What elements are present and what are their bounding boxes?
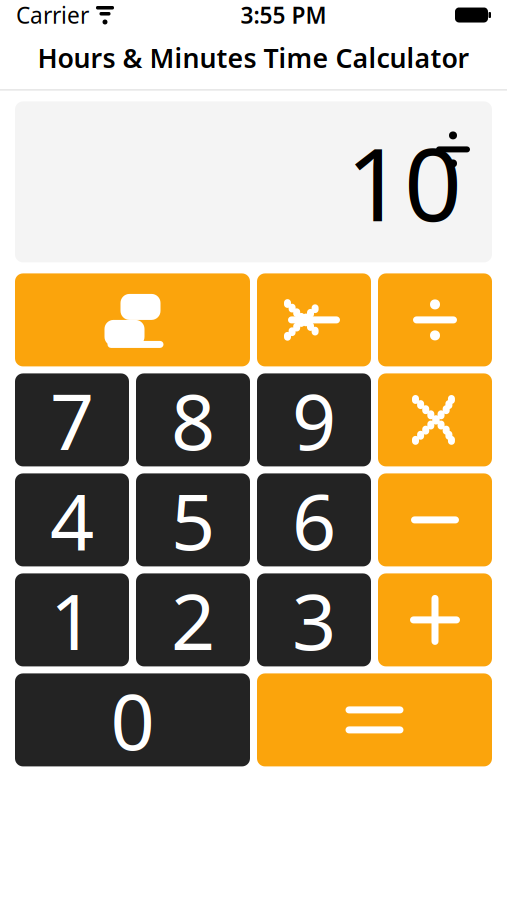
button[interactable]: Minus [378, 473, 492, 566]
button[interactable]: 7 [15, 373, 129, 466]
button[interactable]: Clear [15, 273, 250, 366]
staticText: 6 [292, 469, 336, 571]
button[interactable]: 5 [136, 473, 250, 566]
staticText: 9 [292, 369, 336, 471]
staticText: Hours & Minutes Time Calculator [37, 40, 469, 75]
staticText: Carrier [16, 0, 89, 30]
staticText: 3 [292, 569, 336, 671]
staticText: 2 [171, 569, 215, 671]
button[interactable]: 8 [136, 373, 250, 466]
button[interactable]: 4 [15, 473, 129, 566]
button[interactable]: 2 [136, 573, 250, 666]
staticText: 10 [346, 115, 462, 249]
button[interactable]: 6 [257, 473, 371, 566]
staticText: 1 [50, 569, 94, 671]
button[interactable]: Multiply [378, 373, 492, 466]
staticText: 7 [50, 369, 94, 471]
staticText: 4 [50, 469, 94, 571]
staticText: 3:55 PM [240, 0, 326, 30]
staticText: 8 [171, 369, 215, 471]
button[interactable]: Equals [257, 673, 492, 766]
button[interactable]: 3 [257, 573, 371, 666]
button[interactable]: Plus [378, 573, 492, 666]
button[interactable]: Divide [378, 273, 492, 366]
staticText: 5 [171, 469, 215, 571]
button[interactable]: Backspace [257, 273, 371, 366]
button[interactable]: 9 [257, 373, 371, 466]
staticText: 0 [110, 669, 154, 771]
button[interactable]: 0 [15, 673, 250, 766]
button[interactable]: 1 [15, 573, 129, 666]
